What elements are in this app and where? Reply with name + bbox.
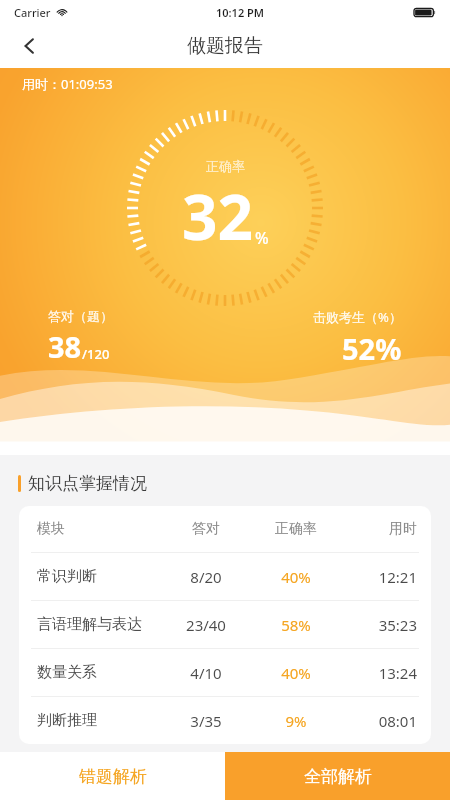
staticText: 58% bbox=[281, 615, 311, 635]
staticText: 40% bbox=[281, 663, 311, 683]
staticText: 正确率 bbox=[206, 158, 245, 174]
button[interactable]: 错题解析 bbox=[0, 752, 225, 800]
staticText: % bbox=[255, 227, 269, 249]
staticText: /120 bbox=[82, 345, 110, 363]
staticText: 38 bbox=[48, 327, 82, 366]
staticText: 答对 bbox=[192, 520, 220, 538]
staticText: 击败考生（%） bbox=[313, 308, 402, 326]
button[interactable]: Back bbox=[10, 26, 50, 66]
staticText: 用时 bbox=[389, 520, 417, 538]
staticText: 8/20 bbox=[190, 567, 222, 587]
staticText: 用时：01:09:53 bbox=[22, 75, 113, 93]
staticText: 模块 bbox=[37, 520, 65, 538]
staticText: 言语理解与表达 bbox=[37, 615, 142, 634]
staticText: 32 bbox=[182, 174, 253, 258]
staticText: 12:21 bbox=[378, 567, 417, 587]
staticText: 13:24 bbox=[378, 663, 417, 683]
staticText: 知识点掌握情况 bbox=[28, 473, 147, 494]
staticText: 常识判断 bbox=[37, 567, 97, 586]
staticText: 3/35 bbox=[190, 711, 222, 731]
button[interactable]: 全部解析 bbox=[225, 752, 450, 800]
staticText: Carrier bbox=[14, 5, 51, 20]
staticText: 判断推理 bbox=[37, 711, 97, 730]
staticText: 52% bbox=[342, 329, 402, 368]
staticText: 数量关系 bbox=[37, 663, 97, 682]
staticText: 做题报告 bbox=[187, 34, 263, 58]
staticText: 答对（题） bbox=[48, 308, 113, 324]
staticText: 全部解析 bbox=[304, 766, 372, 787]
staticText: 正确率 bbox=[275, 520, 317, 538]
staticText: 10:12 PM bbox=[216, 5, 265, 20]
staticText: 08:01 bbox=[378, 711, 417, 731]
staticText: 4/10 bbox=[190, 663, 222, 683]
staticText: 23/40 bbox=[186, 615, 226, 635]
staticText: 35:23 bbox=[378, 615, 417, 635]
staticText: 错题解析 bbox=[79, 766, 147, 787]
staticText: 40% bbox=[281, 567, 311, 587]
staticText: 9% bbox=[285, 711, 307, 731]
